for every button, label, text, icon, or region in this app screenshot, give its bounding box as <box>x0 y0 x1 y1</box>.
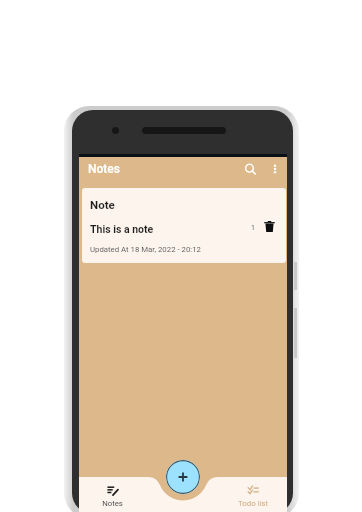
button[interactable]: Add note <box>166 460 200 494</box>
staticText: Note <box>90 198 115 211</box>
staticText: Notes <box>102 499 123 508</box>
button[interactable]: Note <box>82 188 286 263</box>
staticText: Todo list <box>238 499 268 508</box>
staticText: Notes <box>88 162 120 176</box>
staticText: This is a note <box>90 223 154 235</box>
button[interactable]: Delete note <box>261 218 278 235</box>
staticText: 1 <box>251 224 255 232</box>
button[interactable]: Search <box>237 156 263 182</box>
button[interactable]: Todo list <box>219 477 287 512</box>
button[interactable]: Notes <box>79 477 146 512</box>
button[interactable]: More options <box>264 158 286 180</box>
staticText: Updated At 18 Mar, 2022 - 20:12 <box>90 245 201 254</box>
